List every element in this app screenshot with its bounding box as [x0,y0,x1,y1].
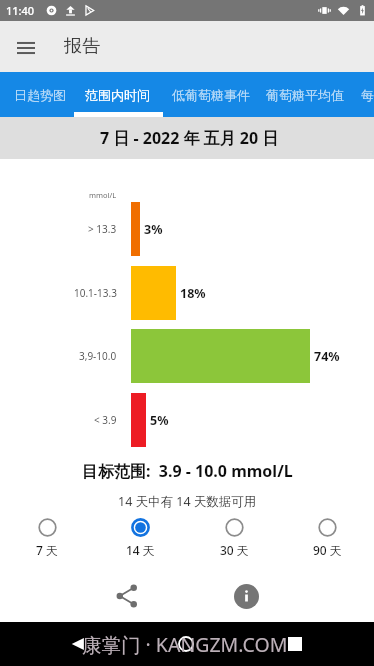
button[interactable]: 7 天 [12,516,82,560]
button[interactable]: 低葡萄糖事件 [162,72,260,118]
button[interactable]: Menu [8,29,44,65]
staticText: mmol/L [89,190,117,200]
staticText: 目标范围: 3.9 - 10.0 mmol/L [82,460,293,482]
button[interactable]: 葡萄糖平均值 [256,72,354,118]
staticText: 11:40 [6,3,35,18]
staticText: 3,9-10.0 [79,349,117,363]
staticText: 3% [144,221,163,238]
button[interactable]: 30 天 [199,516,269,560]
staticText: 报告 [64,35,100,58]
staticText: 74% [314,348,340,365]
staticText: 14 天 [126,542,155,558]
staticText: 7 天 [36,542,58,558]
button[interactable]: Home [174,632,198,656]
button[interactable]: 14 天 [105,516,175,560]
staticText: 5% [150,412,169,429]
button[interactable]: Info [228,578,264,614]
staticText: 低葡萄糖事件 [172,87,250,103]
staticText: 7 日 - 2022 年 五月 20 日 [100,127,279,149]
button[interactable]: Share [109,578,145,614]
staticText: 18% [180,285,206,302]
button[interactable]: Recents [283,632,307,656]
staticText: < 3.9 [94,413,117,427]
staticText: 康掌门 · KANGZM.COM [82,631,288,658]
staticText: 10.1-13.3 [74,286,117,300]
staticText: > 13.3 [88,222,117,236]
staticText: 每 [361,87,374,103]
staticText: 30 天 [220,542,249,558]
staticText: 范围内时间 [85,87,150,103]
button[interactable]: 90 天 [292,516,362,560]
staticText: 葡萄糖平均值 [266,87,344,103]
button[interactable]: 范围内时间 [75,72,160,118]
staticText: 日趋势图 [14,87,66,103]
button[interactable]: 每 [350,72,374,118]
button[interactable]: 日趋势图 [4,72,76,118]
staticText: 90 天 [313,542,342,558]
staticText: 14 天中有 14 天数据可用 [118,493,257,510]
button[interactable]: Back [66,632,90,656]
